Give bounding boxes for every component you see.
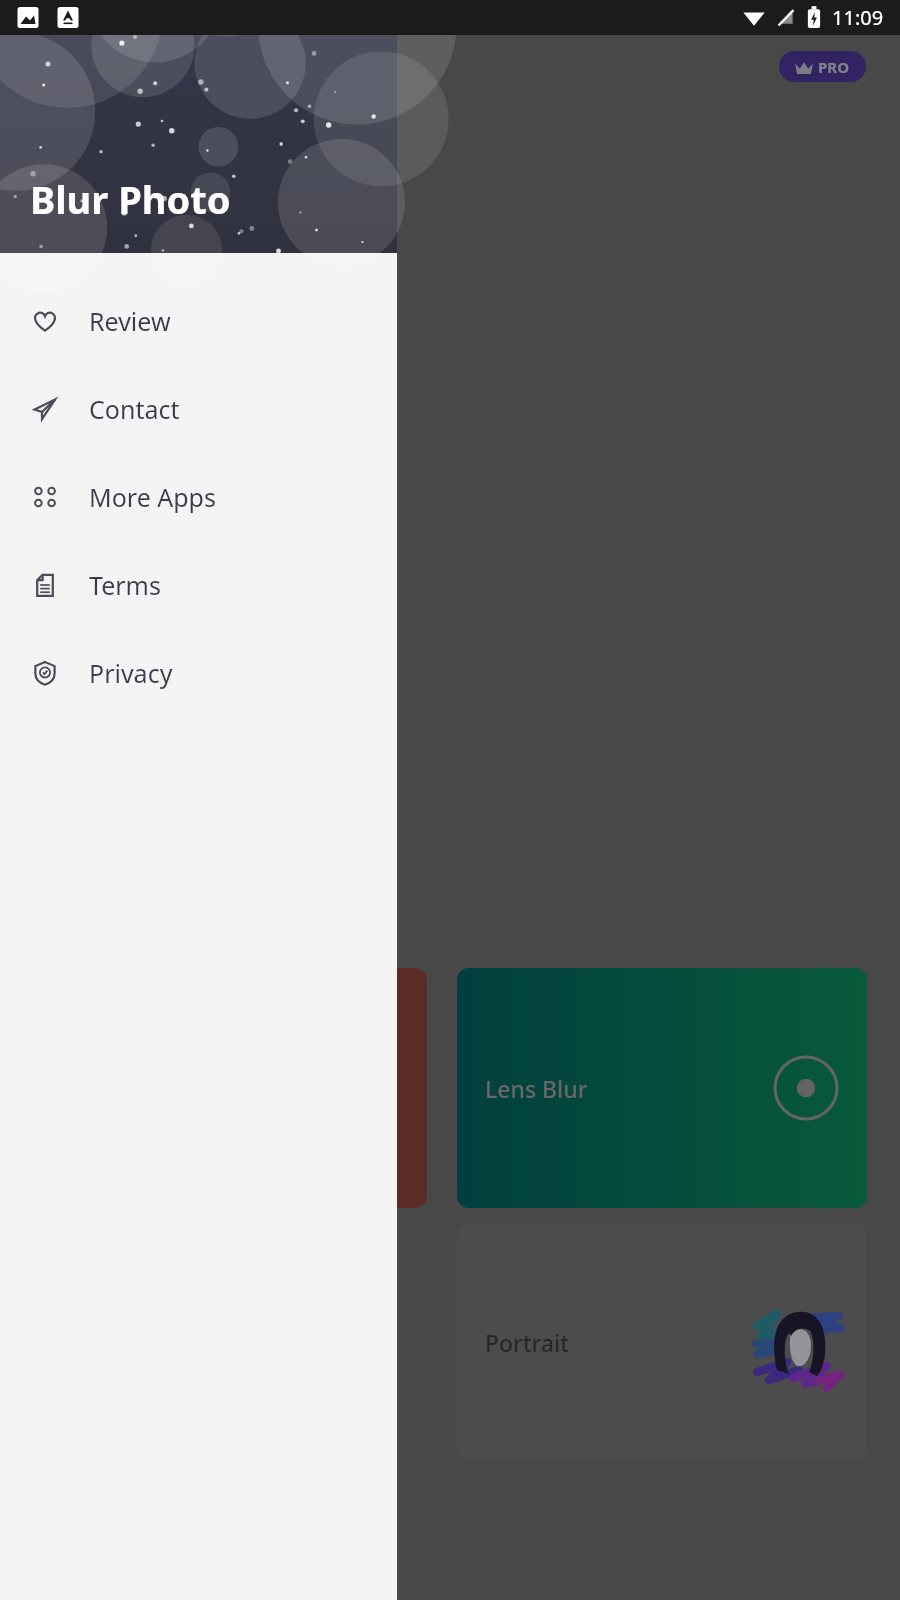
button[interactable]: Contact [0, 365, 397, 453]
staticText: Privacy [89, 656, 173, 690]
staticText: Terms [89, 568, 161, 602]
staticText: Blur Photo [30, 173, 231, 225]
staticText: Portrait [485, 1327, 570, 1358]
button[interactable]: Lens Blur [457, 968, 867, 1208]
staticText: Review [89, 304, 171, 338]
button[interactable]: Blur Photo [0, 0, 397, 1600]
button[interactable]: Terms [0, 541, 397, 629]
button[interactable] [34, 968, 427, 1208]
staticText: PRO [818, 57, 850, 77]
button[interactable]: Review [0, 277, 397, 365]
staticText: Contact [89, 392, 180, 426]
button[interactable]: More Apps [0, 453, 397, 541]
button[interactable] [34, 1224, 427, 1460]
staticText: More Apps [89, 480, 216, 514]
button[interactable]: Privacy [0, 629, 397, 717]
button[interactable]: PRO [779, 51, 866, 82]
staticText: 11:09 [832, 4, 884, 31]
button[interactable] [0, 0, 900, 1600]
button[interactable]: Portrait [457, 1224, 867, 1460]
staticText: Lens Blur [485, 1073, 588, 1104]
